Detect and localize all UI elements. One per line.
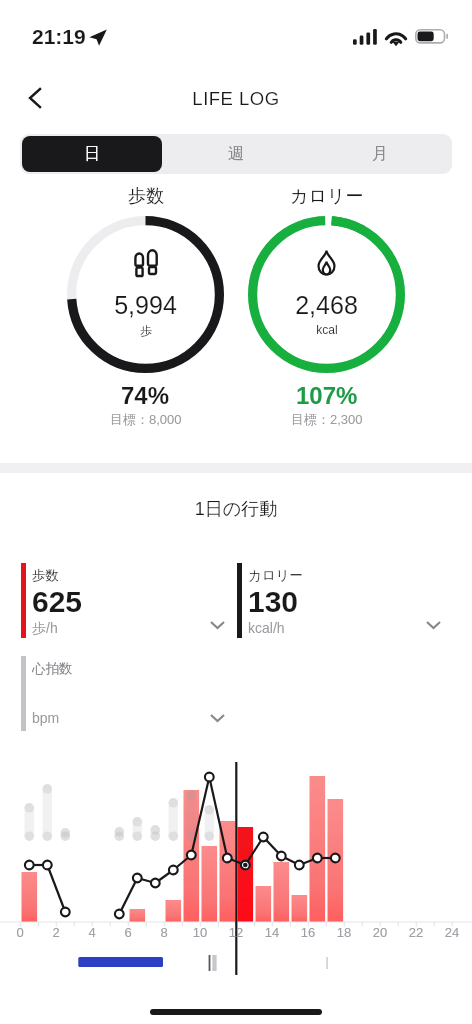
button[interactable]: Expand カロリー (413, 611, 453, 639)
staticText: 2 (44, 925, 68, 940)
staticText: 24 (440, 925, 464, 940)
button[interactable]: 心拍数 (21, 656, 237, 732)
staticText: 4 (80, 925, 104, 940)
staticText: 週 (228, 144, 244, 164)
staticText: 歩 (140, 323, 152, 338)
staticText: 10 (188, 925, 212, 940)
staticText: 18 (332, 925, 356, 940)
button[interactable]: Expand 歩数 (197, 611, 237, 639)
button[interactable]: 月 (310, 136, 450, 172)
staticText: kcal (316, 323, 338, 336)
staticText: 歩数 (32, 567, 59, 584)
staticText: カロリー (290, 185, 364, 208)
staticText: kcal/h (248, 620, 285, 636)
staticText: 16 (296, 925, 320, 940)
staticText: 12 (224, 925, 248, 940)
button[interactable]: 歩数 (21, 563, 237, 639)
staticText: 目標：2,300 (291, 411, 363, 427)
staticText: 日 (84, 144, 100, 164)
staticText: 心拍数 (32, 660, 73, 677)
staticText: 歩数 (128, 185, 164, 208)
button[interactable]: カロリー (237, 563, 453, 639)
staticText: 2,468 (295, 291, 358, 319)
staticText: 21:19 (32, 25, 86, 48)
staticText: LIFE LOG (192, 88, 280, 109)
button[interactable]: カロリー (248, 185, 405, 427)
staticText: bpm (32, 710, 60, 726)
staticText: 74% (121, 382, 170, 409)
staticText: 5,994 (114, 291, 177, 319)
staticText: 8 (152, 925, 176, 940)
staticText: 6 (116, 925, 140, 940)
staticText: 625 (32, 585, 83, 619)
staticText: 歩/h (32, 620, 58, 638)
staticText: 107% (296, 382, 358, 409)
staticText: 0 (8, 925, 32, 940)
staticText: 14 (260, 925, 284, 940)
button[interactable]: 週 (166, 136, 306, 172)
button[interactable]: 歩数 (67, 185, 224, 427)
staticText: 月 (372, 144, 388, 164)
staticText: 目標：8,000 (110, 411, 182, 427)
button[interactable]: Expand 心拍数 (197, 704, 237, 732)
staticText: 130 (248, 585, 299, 619)
button[interactable]: Back (13, 76, 57, 120)
staticText: 1日の行動 (0, 498, 472, 521)
button[interactable]: 日 (22, 136, 162, 172)
staticText: 20 (368, 925, 392, 940)
staticText: カロリー (248, 567, 303, 584)
staticText: 22 (404, 925, 428, 940)
